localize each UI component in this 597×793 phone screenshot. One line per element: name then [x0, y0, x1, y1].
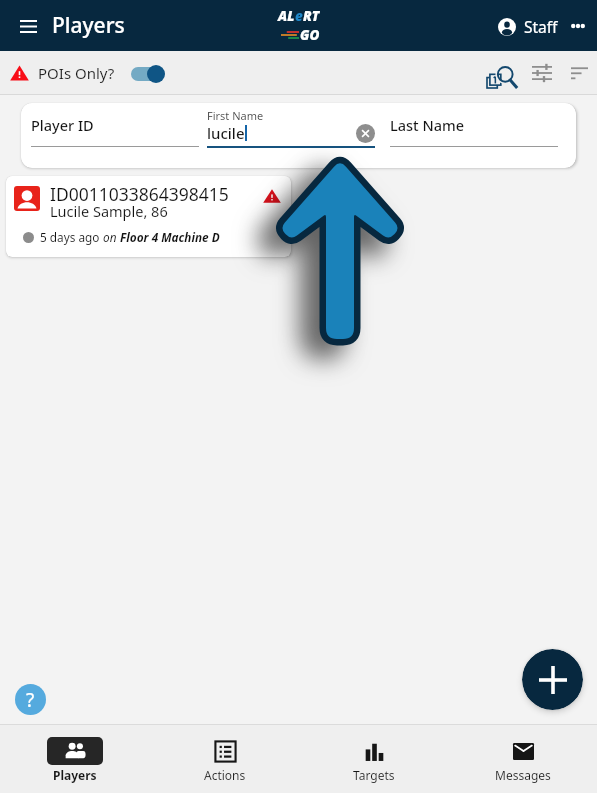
- staticText: 5 days ago: [40, 229, 103, 245]
- button[interactable]: Targets: [299, 737, 448, 783]
- button[interactable]: ID0011033864398415: [6, 176, 291, 257]
- staticText: Staff: [524, 16, 558, 37]
- button[interactable]: Messages: [448, 737, 597, 783]
- button[interactable]: First Name: [207, 108, 375, 148]
- button[interactable]: Add: [522, 649, 583, 710]
- button[interactable]: Menu: [8, 6, 48, 46]
- staticText: Targets: [353, 767, 395, 783]
- staticText: ?: [26, 687, 35, 713]
- button[interactable]: Saved searches: [481, 51, 523, 94]
- staticText: Player ID: [31, 115, 94, 135]
- staticText: AL: [278, 7, 295, 25]
- staticText: on: [103, 229, 120, 245]
- staticText: Actions: [204, 767, 246, 783]
- button[interactable]: Last Name: [390, 108, 558, 147]
- button[interactable]: Players: [0, 737, 150, 783]
- staticText: Messages: [495, 767, 551, 783]
- button[interactable]: Player ID: [31, 108, 199, 147]
- button[interactable]: More options: [562, 9, 593, 43]
- staticText: e: [295, 7, 303, 25]
- staticText: First Name: [207, 108, 264, 123]
- staticText: Floor 4 Machine D: [120, 229, 220, 245]
- button[interactable]: Sort: [561, 51, 597, 94]
- button[interactable]: Clear: [356, 124, 375, 143]
- staticText: RT: [303, 7, 320, 25]
- staticText: Players: [52, 11, 125, 40]
- staticText: ID0011033864398415: [50, 182, 229, 206]
- staticText: Players: [53, 767, 97, 783]
- button[interactable]: Filter: [523, 51, 561, 94]
- button[interactable]: Actions: [150, 737, 299, 783]
- staticText: GO: [300, 26, 320, 44]
- button[interactable]: POIs Only?: [0, 56, 173, 89]
- staticText: POIs Only?: [38, 63, 115, 83]
- button[interactable]: Help: [15, 684, 46, 715]
- staticText: lucile: [207, 123, 245, 143]
- staticText: Last Name: [390, 115, 465, 135]
- button[interactable]: Staff: [494, 10, 562, 43]
- staticText: Lucile Sample, 86: [50, 201, 168, 221]
